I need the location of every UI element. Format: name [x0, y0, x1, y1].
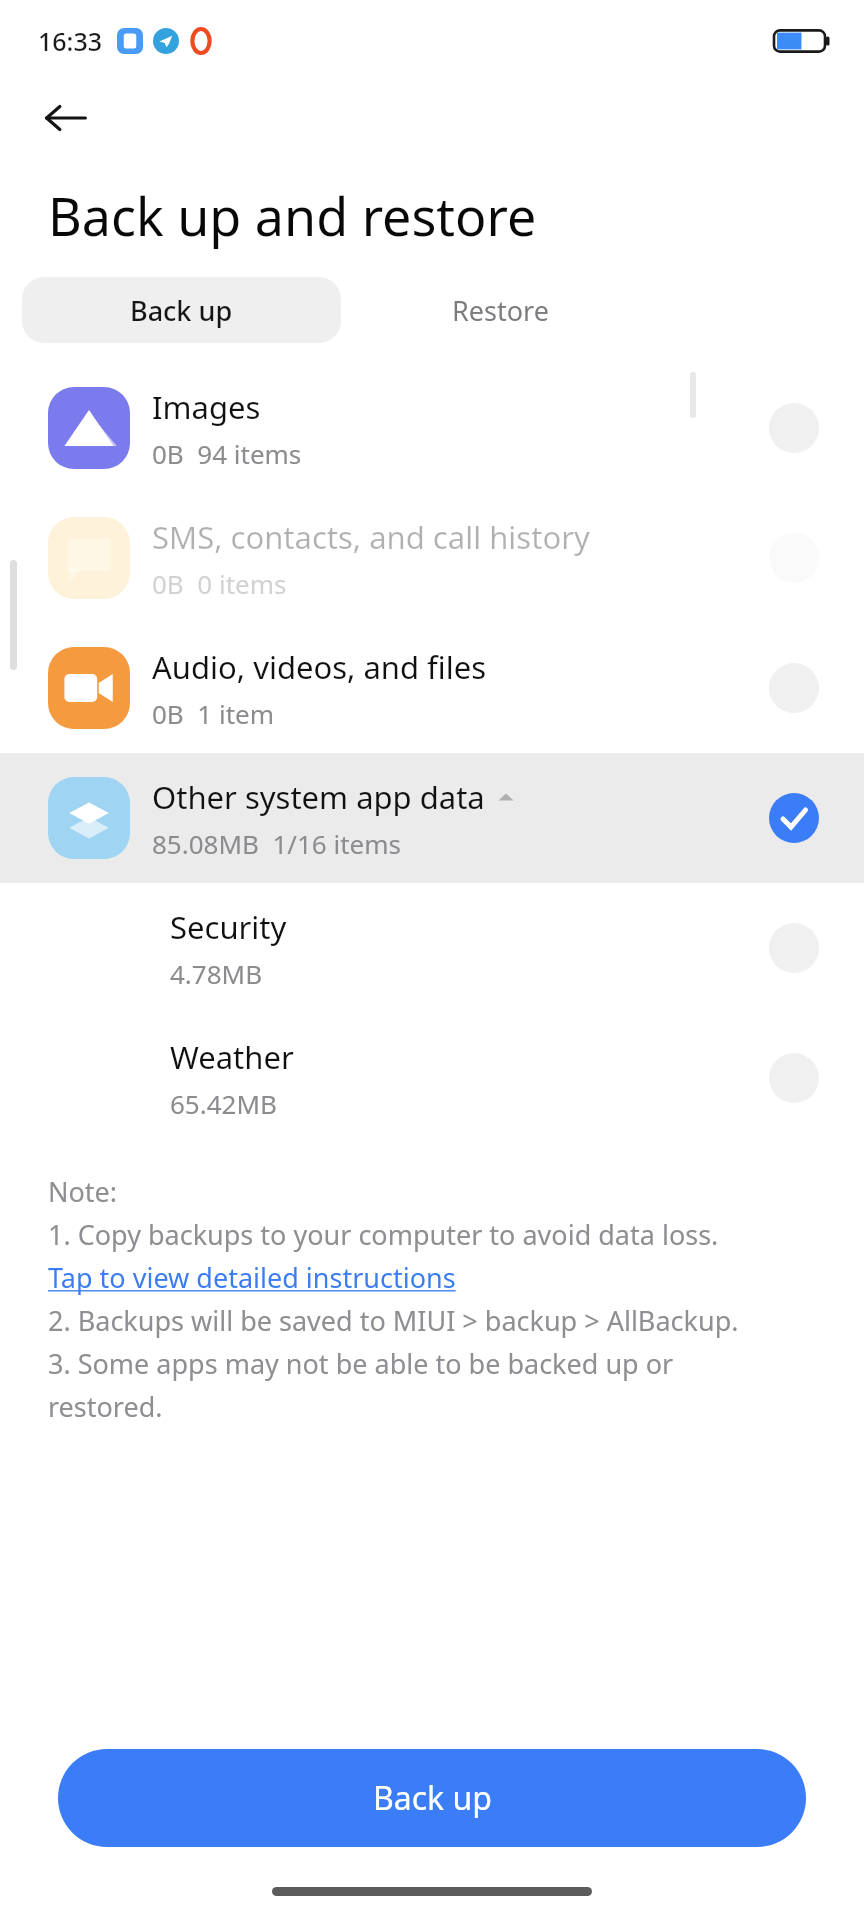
- staticText: Back up and restore: [48, 180, 537, 251]
- button[interactable]: Other system app data: [0, 753, 864, 883]
- staticText: Other system app data: [152, 776, 485, 818]
- staticText: 16:33: [38, 24, 103, 58]
- button[interactable]: Weather: [0, 1013, 864, 1143]
- staticText: Tap to view detailed instructions: [48, 1259, 456, 1296]
- button[interactable]: Back up: [58, 1749, 806, 1847]
- staticText: 3. Some apps may not be able to be backe…: [48, 1345, 674, 1382]
- button[interactable]: Back: [30, 82, 102, 154]
- staticText: 1. Copy backups to your computer to avoi…: [48, 1216, 719, 1253]
- staticText: 0B 94 items: [152, 436, 302, 471]
- staticText: 4.78MB: [170, 956, 263, 991]
- staticText: 0B 0 items: [152, 566, 287, 601]
- button[interactable]: Not selected: [768, 662, 820, 714]
- staticText: Back up: [373, 1776, 492, 1820]
- staticText: Note:: [48, 1173, 118, 1210]
- button[interactable]: Not selected: [768, 1052, 820, 1104]
- staticText: Back up: [130, 292, 233, 329]
- button[interactable]: Restore: [341, 277, 660, 343]
- staticText: Weather: [170, 1036, 294, 1078]
- staticText: Audio, videos, and files: [152, 646, 487, 688]
- button[interactable]: Images: [0, 363, 864, 493]
- staticText: Restore: [452, 292, 549, 329]
- button[interactable]: Tap to view detailed instructions: [48, 1259, 456, 1296]
- button[interactable]: Security: [0, 883, 864, 1013]
- button[interactable]: Not selected: [768, 922, 820, 974]
- button[interactable]: Selected: [768, 792, 820, 844]
- button[interactable]: SMS, contacts, and call history: [0, 493, 864, 623]
- staticText: Images: [152, 386, 261, 428]
- button[interactable]: Not selected: [768, 402, 820, 454]
- staticText: restored.: [48, 1388, 163, 1425]
- staticText: 0B 1 item: [152, 696, 274, 731]
- button[interactable]: Back up: [22, 277, 341, 343]
- staticText: 65.42MB: [170, 1086, 277, 1121]
- staticText: 85.08MB 1/16 items: [152, 826, 402, 861]
- staticText: 2. Backups will be saved to MIUI > backu…: [48, 1302, 739, 1339]
- staticText: Security: [170, 906, 287, 948]
- button[interactable]: Audio, videos, and files: [0, 623, 864, 753]
- staticText: SMS, contacts, and call history: [152, 516, 590, 558]
